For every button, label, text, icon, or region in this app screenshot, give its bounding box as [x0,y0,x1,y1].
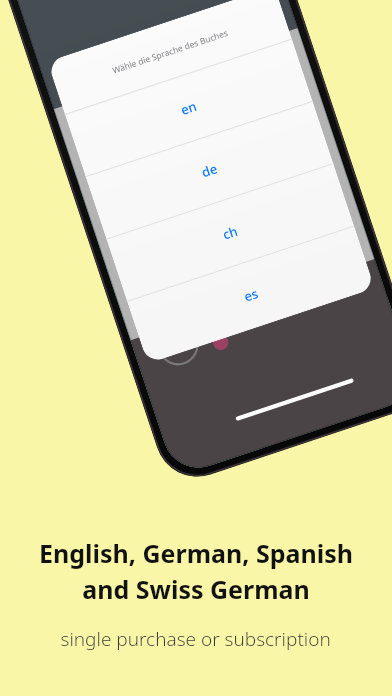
button[interactable]: App store screenshot [0,0,392,696]
